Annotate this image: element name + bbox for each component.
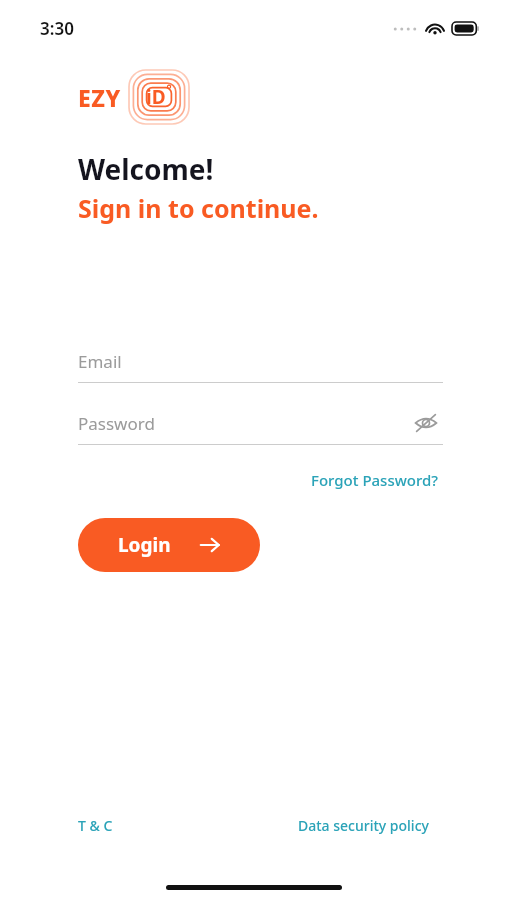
staticText: Login <box>118 532 171 558</box>
button[interactable]: Login <box>78 518 260 572</box>
button[interactable]: T & C <box>74 810 117 841</box>
staticText: Data security policy <box>298 816 429 835</box>
staticText: 3:30 <box>40 17 74 40</box>
staticText: Email <box>78 350 122 373</box>
button[interactable]: Data security policy <box>294 810 433 841</box>
button[interactable]: Forgot Password? <box>307 464 443 496</box>
staticText: Password <box>78 412 155 435</box>
button[interactable]: Email <box>78 340 443 383</box>
button[interactable]: Password <box>78 402 443 444</box>
staticText: EZY <box>78 82 121 113</box>
staticText: Welcome! <box>78 150 214 188</box>
staticText: iD <box>146 84 166 110</box>
staticText: Sign in to continue. <box>78 191 319 225</box>
button[interactable]: Show password <box>409 406 443 440</box>
staticText: Forgot Password? <box>311 470 439 490</box>
staticText: T & C <box>78 816 113 835</box>
